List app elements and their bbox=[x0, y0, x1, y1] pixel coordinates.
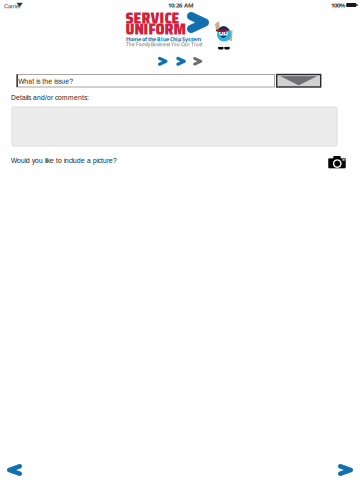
staticText: The Family Business You Can Trust bbox=[126, 40, 202, 48]
staticText: What is the issue? bbox=[18, 78, 73, 85]
button[interactable]: Choose issue bbox=[277, 74, 321, 87]
staticText: UNIFORM bbox=[125, 17, 185, 41]
staticText: Details and/or comments: bbox=[11, 94, 89, 101]
button[interactable]: Add picture bbox=[328, 154, 346, 167]
button[interactable]: Back bbox=[0, 457, 29, 480]
staticText: Would you like to include a picture? bbox=[11, 157, 117, 164]
staticText: 100% bbox=[331, 1, 345, 9]
staticText: 10:26 AM bbox=[168, 1, 194, 9]
button[interactable]: Next bbox=[331, 457, 360, 480]
staticText: SERVICE bbox=[125, 6, 179, 30]
staticText: Carrier bbox=[4, 3, 21, 9]
staticText: Home of the Blue Chip System bbox=[126, 35, 201, 43]
